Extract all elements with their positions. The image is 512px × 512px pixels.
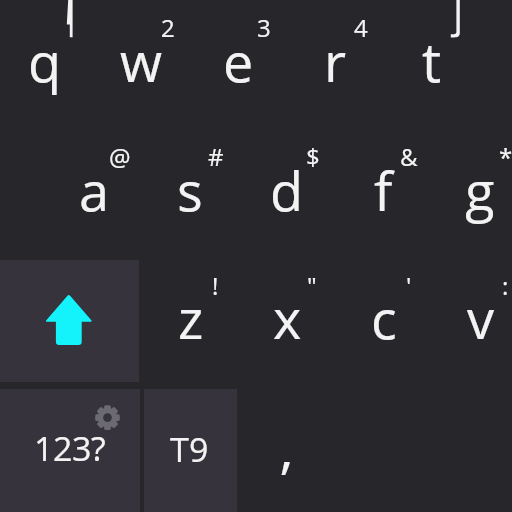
button[interactable] — [144, 389, 237, 512]
button[interactable] — [0, 389, 140, 512]
button[interactable]: Shift — [0, 260, 139, 382]
